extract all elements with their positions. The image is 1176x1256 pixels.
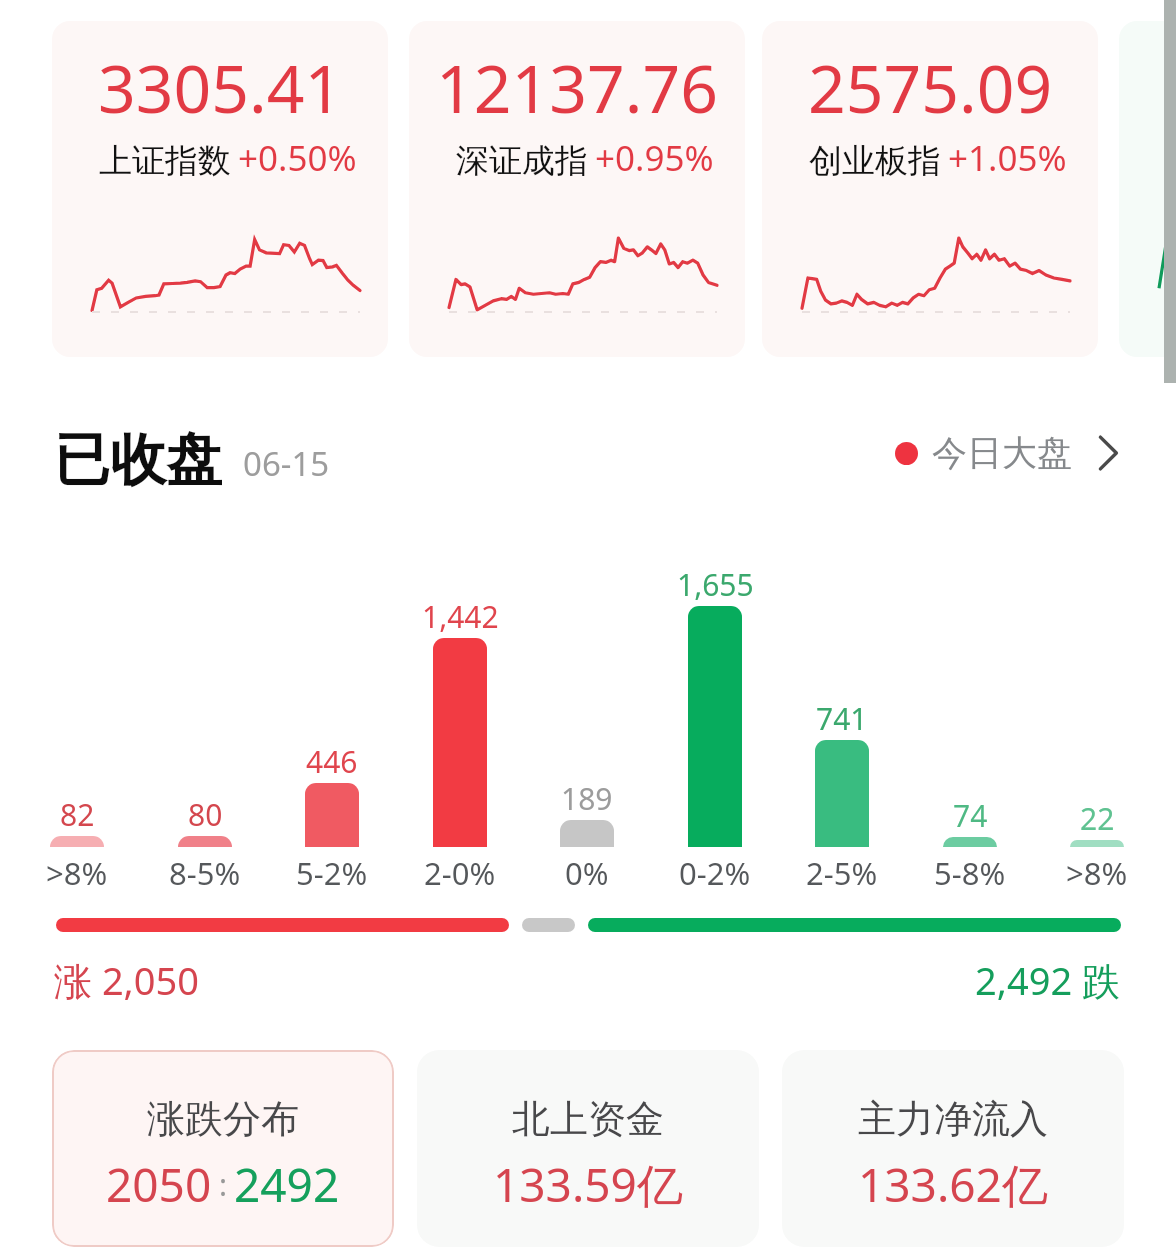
staticText: 189 — [561, 778, 613, 819]
staticText: 5-2% — [296, 852, 368, 892]
staticText: 2,492 跌 — [975, 954, 1121, 1006]
staticText: 2492 — [234, 1153, 340, 1216]
staticText: : — [219, 1164, 228, 1205]
staticText: 0-2% — [679, 852, 751, 892]
staticText: 82 — [60, 794, 95, 835]
staticText: 133.59亿 — [493, 1153, 683, 1216]
staticText: 今日大盘 — [932, 431, 1072, 475]
staticText: 0% — [565, 852, 609, 892]
staticText: 8-5% — [169, 852, 241, 892]
staticText: 06-15 — [243, 441, 330, 486]
staticText: 12137.76 — [436, 42, 718, 132]
staticText: 22 — [1080, 798, 1115, 839]
staticText: 741 — [816, 698, 868, 739]
staticText: +1.05% — [948, 134, 1067, 182]
staticText: 2050 — [106, 1153, 212, 1216]
staticText: 主力净流入 — [858, 1095, 1048, 1143]
staticText: 上证指数 — [99, 140, 231, 182]
staticText: 3305.41 — [98, 42, 343, 132]
staticText: 深证成指 — [456, 140, 588, 182]
staticText: >8% — [1066, 852, 1128, 892]
button[interactable]: 北上资金 — [417, 1050, 759, 1247]
staticText: 446 — [306, 741, 358, 782]
staticText: 133.62亿 — [858, 1153, 1048, 1216]
staticText: 涨跌分布 — [147, 1095, 299, 1143]
staticText: 已收盘 — [54, 425, 222, 495]
staticText: +0.95% — [595, 134, 714, 182]
staticText: 创业板指 — [809, 140, 941, 182]
button[interactable]: 2575.09 — [762, 21, 1098, 357]
button[interactable]: 3305.41 — [52, 21, 388, 357]
staticText: >8% — [46, 852, 108, 892]
staticText: 80 — [188, 794, 223, 835]
button[interactable]: 今日大盘 — [895, 428, 1118, 478]
staticText: 1,655 — [677, 564, 754, 605]
staticText: 5-8% — [934, 852, 1006, 892]
button[interactable]: Next index card — [1119, 21, 1176, 357]
staticText: 2-5% — [806, 852, 878, 892]
staticText: 涨 2,050 — [54, 954, 200, 1006]
staticText: +0.50% — [238, 134, 357, 182]
staticText: 2-0% — [424, 852, 496, 892]
staticText: 2575.09 — [808, 42, 1053, 132]
button[interactable]: 主力净流入 — [782, 1050, 1124, 1247]
button[interactable]: 涨跌分布 — [52, 1050, 394, 1247]
other: Open today's market — [1098, 435, 1118, 471]
staticText: 1,442 — [422, 596, 499, 637]
staticText: 北上资金 — [512, 1095, 664, 1143]
button[interactable]: 12137.76 — [409, 21, 745, 357]
staticText: 74 — [953, 795, 988, 836]
